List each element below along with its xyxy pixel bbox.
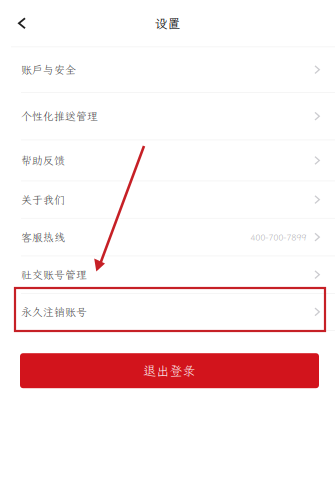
button[interactable]: 关于我们	[0, 181, 335, 219]
staticText: 永久注销账号	[21, 305, 87, 319]
button[interactable]: 永久注销账号	[0, 294, 335, 331]
button[interactable]: Back	[0, 0, 44, 46]
staticText: 400-700-7899	[250, 231, 306, 243]
button[interactable]: 退出登录	[20, 353, 319, 388]
button[interactable]: 客服热线	[0, 219, 335, 256]
staticText: 客服热线	[21, 230, 65, 244]
staticText: 社交账号管理	[21, 267, 87, 282]
staticText: 关于我们	[21, 192, 65, 207]
staticText: 账户与安全	[21, 62, 76, 77]
staticText: 退出登录	[143, 362, 195, 379]
staticText: 帮助反馈	[21, 153, 65, 167]
button[interactable]: 帮助反馈	[0, 140, 335, 181]
button[interactable]: 账户与安全	[0, 47, 335, 93]
staticText: 设置	[154, 15, 180, 32]
staticText: 个性化推送管理	[21, 109, 98, 123]
button[interactable]: 个性化推送管理	[0, 93, 335, 140]
button[interactable]: 社交账号管理	[0, 256, 335, 294]
